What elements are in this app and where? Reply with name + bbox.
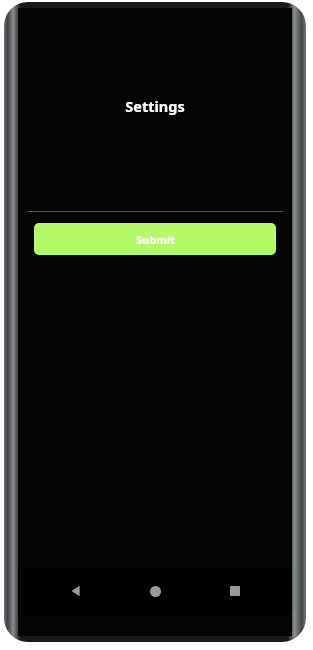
- staticText: Settings: [18, 96, 292, 116]
- button[interactable]: Submit: [34, 223, 276, 255]
- button[interactable]: Recent apps: [213, 569, 257, 613]
- button[interactable]: Back: [54, 569, 98, 613]
- staticText: Submit: [136, 232, 175, 247]
- button[interactable]: Home: [133, 569, 177, 613]
